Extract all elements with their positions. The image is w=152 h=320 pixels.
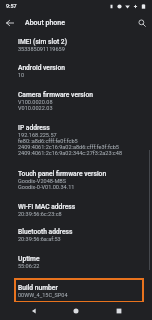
staticText: Android version [18,64,65,72]
staticText: About phone [25,19,65,27]
staticText: Uptime [18,255,40,263]
button[interactable]: Uptime [14,249,144,274]
button[interactable]: Search [134,15,150,31]
staticText: 20:39:56:6a:af:53 [18,236,61,242]
button[interactable]: Wi-Fi MAC address [14,197,144,222]
staticText: IMEI (sim slot 2) [18,38,67,46]
button[interactable]: IMEI (sim slot 2) [14,32,144,57]
staticText: IP address [18,124,50,132]
staticText: Goodix-V2048-MBS [18,178,66,184]
staticText: Build number [18,284,58,292]
staticText: 00WW_4_15C_SP04 [18,292,68,298]
button[interactable]: Camera firmware version [14,85,144,117]
button[interactable]: Bluetooth address [14,222,144,247]
staticText: 353385091119659 [18,46,65,52]
button[interactable]: Build number [14,278,144,303]
staticText: Wi-Fi MAC address [18,203,76,211]
button[interactable]: Android version [14,58,144,83]
button[interactable]: Recent apps [110,302,128,320]
button[interactable]: Home [67,302,85,320]
staticText: V010.0022.03 [18,105,53,111]
button[interactable]: Back [2,15,18,31]
staticText: 10 [18,72,25,78]
staticText: Camera firmware version [18,91,93,99]
staticText: 9:57 [6,3,17,9]
staticText: 2409:4061:2c16:9a02:a8d6:cfff:fe3f:fcb5 [18,144,119,150]
staticText: fe80::a8d6:cfff:fe0f:fcb5 [18,138,78,144]
button[interactable]: Touch panel firmware version [14,164,144,196]
staticText: 192.168.225.57 [18,132,57,138]
button[interactable]: IP address [14,118,144,162]
staticText: 55:06:22 [18,263,40,269]
staticText: 2409:4061:2c16:9a02:344c:27f3:2a23:c48 [18,150,123,156]
staticText: Touch panel firmware version [18,170,107,178]
button[interactable]: Back [25,302,43,320]
staticText: Bluetooth address [18,228,73,236]
staticText: V100.0020.08 [18,99,53,105]
staticText: Goodix-0-V01.00.34.11 [18,184,75,190]
staticText: 20:39:56:6c:23:c8 [18,211,62,217]
